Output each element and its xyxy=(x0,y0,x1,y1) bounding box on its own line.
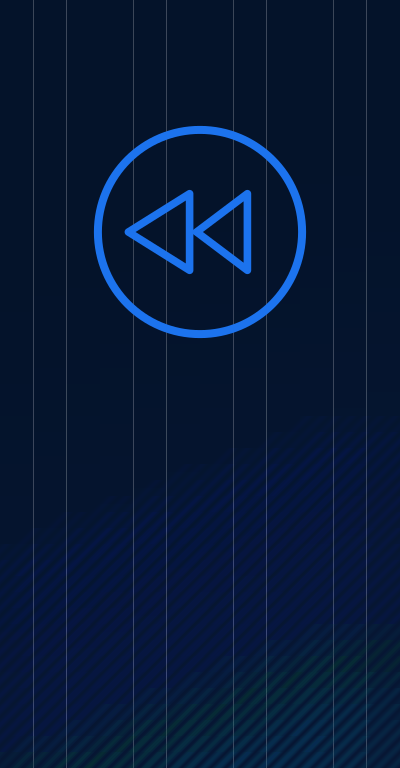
button[interactable]: Rewind xyxy=(0,0,400,768)
